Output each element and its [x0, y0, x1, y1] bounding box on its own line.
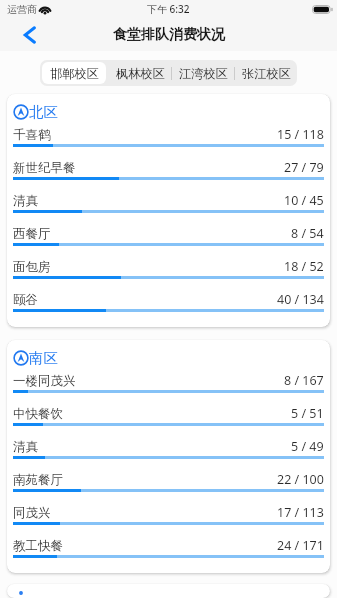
staticText: 新世纪早餐	[13, 160, 76, 176]
staticText: 8 / 54	[291, 225, 324, 242]
staticText: 40 / 134	[277, 291, 324, 308]
button[interactable]: 同茂兴	[13, 504, 324, 537]
staticText: 食堂排队消费状况	[113, 26, 225, 44]
staticText: 清真	[13, 193, 38, 209]
button[interactable]: 南苑餐厅	[13, 471, 324, 504]
staticText: 邯郸校区	[50, 66, 99, 81]
button[interactable]: 一楼同茂兴	[13, 372, 324, 405]
staticText: 15 / 118	[277, 126, 324, 143]
staticText: 江湾校区	[179, 66, 228, 81]
button[interactable]: 清真	[13, 438, 324, 471]
staticText: 同茂兴	[13, 505, 51, 521]
staticText: 清真	[13, 439, 38, 455]
button[interactable]: 邯郸校区	[42, 62, 106, 84]
staticText: 8 / 167	[284, 372, 324, 389]
staticText: 中快餐饮	[13, 406, 63, 422]
staticText: 22 / 100	[277, 471, 324, 488]
staticText: 西餐厅	[13, 226, 51, 242]
button[interactable]: 枫林校区	[109, 60, 171, 86]
button[interactable]: 清真	[13, 192, 324, 225]
staticText: 千喜鹤	[13, 127, 51, 143]
button[interactable]: Back	[0, 18, 52, 51]
button[interactable]: 中快餐饮	[13, 405, 324, 438]
staticText: 17 / 113	[277, 504, 324, 521]
staticText: 18 / 52	[284, 258, 324, 275]
staticText: 北区	[29, 103, 58, 121]
button[interactable]: 面包房	[13, 258, 324, 291]
staticText: 5 / 51	[291, 405, 324, 422]
button[interactable]: 千喜鹤	[13, 126, 324, 159]
button[interactable]: 江湾校区	[172, 60, 234, 86]
staticText: 南苑餐厅	[13, 472, 63, 488]
staticText: 教工快餐	[13, 538, 63, 554]
staticText: 10 / 45	[284, 192, 324, 209]
staticText: 5 / 49	[291, 438, 324, 455]
staticText: 枫林校区	[116, 66, 165, 81]
staticText: 南区	[29, 349, 58, 367]
staticText: 下午 6:32	[147, 2, 190, 16]
staticText: 面包房	[13, 259, 51, 275]
button[interactable]: 西餐厅	[13, 225, 324, 258]
staticText: 27 / 79	[284, 159, 324, 176]
staticText: 颐谷	[13, 292, 38, 308]
button[interactable]: 张江校区	[235, 60, 297, 86]
button[interactable]: 教工快餐	[13, 537, 324, 559]
button[interactable]: 颐谷	[13, 291, 324, 313]
staticText: 一楼同茂兴	[13, 373, 76, 389]
staticText: 运营商	[7, 3, 37, 16]
button[interactable]: 新世纪早餐	[13, 159, 324, 192]
staticText: 张江校区	[242, 66, 291, 81]
staticText: 24 / 171	[277, 537, 324, 554]
